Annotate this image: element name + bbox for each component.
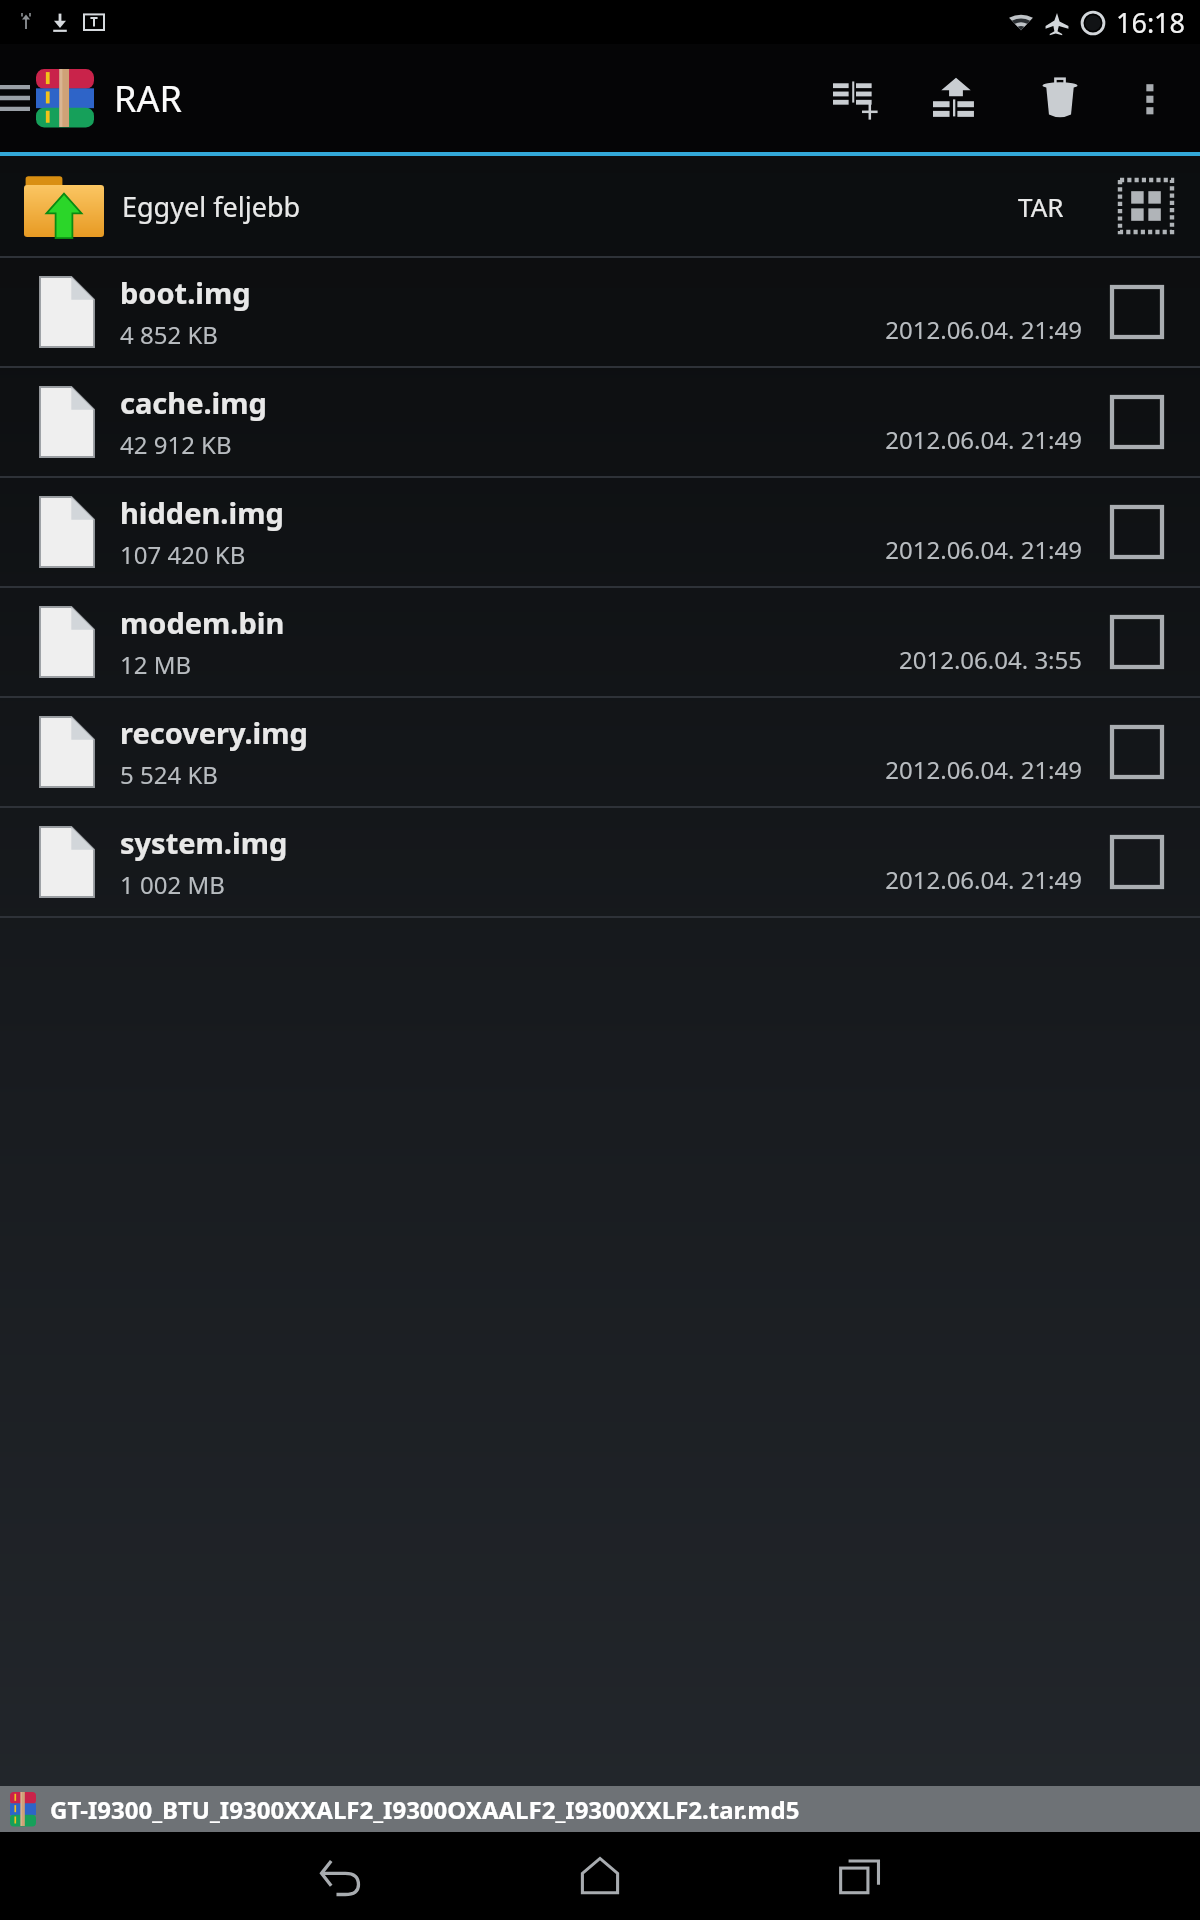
button[interactable]: Extract (916, 44, 996, 152)
staticText: system.img (120, 823, 288, 862)
button[interactable]: boot.img (0, 258, 1200, 366)
button[interactable]: Select hidden.img (1082, 478, 1192, 586)
staticText: 107 420 KB (120, 538, 246, 571)
staticText: cache.img (120, 383, 267, 422)
staticText: 16:18 (1116, 4, 1186, 41)
staticText: 12 MB (120, 648, 192, 681)
button[interactable]: Select boot.img (1082, 258, 1192, 366)
button[interactable]: Select recovery.img (1082, 698, 1192, 806)
button[interactable]: Recent apps (805, 1832, 915, 1920)
staticText: hidden.img (120, 493, 284, 532)
button[interactable]: Select all (1100, 160, 1192, 252)
button[interactable]: More options (1110, 44, 1190, 152)
staticText: Eggyel feljebb (122, 188, 301, 225)
button[interactable]: Navigation drawer, RAR (0, 44, 100, 152)
button[interactable]: Eggyel feljebb (0, 156, 1200, 256)
staticText: 2012.06.04. 21:49 (752, 533, 1082, 566)
staticText: 2012.06.04. 21:49 (752, 423, 1082, 456)
staticText: 2012.06.04. 21:49 (752, 863, 1082, 896)
staticText: recovery.img (120, 713, 308, 752)
button[interactable]: Add to archive (816, 44, 896, 152)
button[interactable]: system.img (0, 808, 1200, 916)
button[interactable]: Delete (1020, 44, 1100, 152)
button[interactable]: Home (545, 1832, 655, 1920)
staticText: RAR (114, 74, 182, 123)
staticText: GT-I9300_BTU_I9300XXALF2_I9300OXAALF2_I9… (50, 1793, 800, 1826)
button[interactable]: cache.img (0, 368, 1200, 476)
button[interactable]: Select cache.img (1082, 368, 1192, 476)
button[interactable]: GT-I9300_BTU_I9300XXALF2_I9300OXAALF2_I9… (0, 1786, 1200, 1832)
button[interactable]: recovery.img (0, 698, 1200, 806)
staticText: 1 002 MB (120, 868, 225, 901)
staticText: 2012.06.04. 21:49 (752, 313, 1082, 346)
button[interactable]: hidden.img (0, 478, 1200, 586)
staticText: TAR (1018, 189, 1064, 224)
button[interactable]: Select system.img (1082, 808, 1192, 916)
staticText: modem.bin (120, 603, 285, 642)
button[interactable]: Select modem.bin (1082, 588, 1192, 696)
staticText: 4 852 KB (120, 318, 218, 351)
staticText: 42 912 KB (120, 428, 232, 461)
staticText: 5 524 KB (120, 758, 218, 791)
button[interactable]: Back (285, 1832, 395, 1920)
staticText: boot.img (120, 273, 251, 312)
staticText: 2012.06.04. 21:49 (752, 753, 1082, 786)
staticText: 2012.06.04. 3:55 (752, 643, 1082, 676)
button[interactable]: modem.bin (0, 588, 1200, 696)
